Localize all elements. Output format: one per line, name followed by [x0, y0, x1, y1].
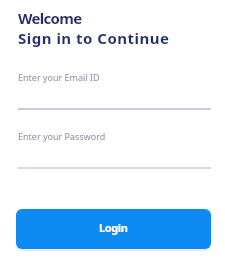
staticText: Enter your Email ID: [18, 71, 100, 83]
staticText: Welcome: [18, 8, 82, 28]
staticText: Sign in to Continue: [18, 28, 170, 48]
staticText: Enter your Password: [18, 130, 106, 142]
button[interactable]: Login: [16, 209, 211, 249]
staticText: Login: [99, 220, 128, 235]
